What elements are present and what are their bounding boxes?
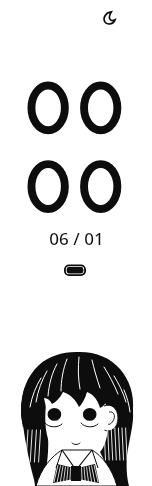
button[interactable]: Battery <box>58 258 94 282</box>
button[interactable]: Clock <box>20 75 132 220</box>
staticText: 06 / 01 <box>49 227 104 250</box>
button[interactable]: Do not disturb <box>100 9 118 27</box>
